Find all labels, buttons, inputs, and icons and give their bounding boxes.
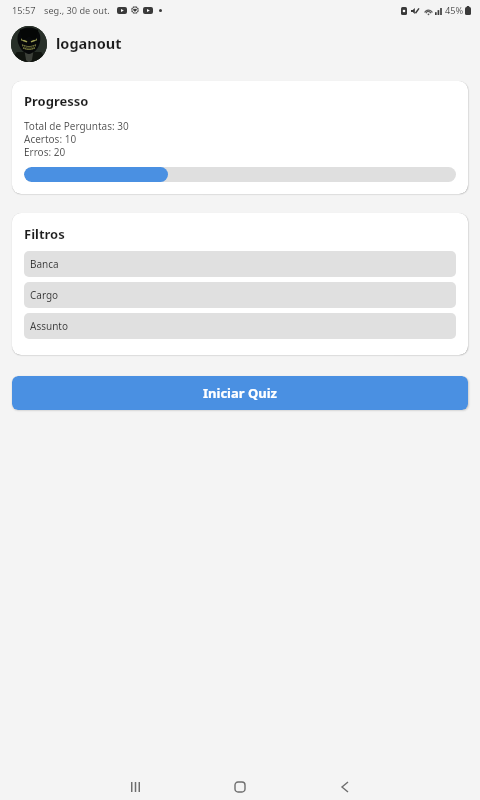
staticText: seg., 30 de out. xyxy=(44,4,110,17)
staticText: Assunto xyxy=(30,319,68,333)
staticText: Progresso xyxy=(24,92,89,110)
staticText: Cargo xyxy=(30,288,59,302)
button[interactable]: Profile avatar xyxy=(11,26,47,62)
staticText: Iniciar Quiz xyxy=(203,384,277,402)
staticText: 15:57 xyxy=(12,4,36,17)
button[interactable]: Iniciar Quiz xyxy=(12,376,468,410)
button[interactable]: Home xyxy=(216,763,264,800)
staticText: Banca xyxy=(30,257,59,271)
button[interactable]: Assunto xyxy=(24,313,456,339)
staticText: Total de Perguntas: 30 xyxy=(24,119,129,133)
staticText: 45% xyxy=(445,4,464,17)
staticText: Acertos: 10 xyxy=(24,132,77,146)
staticText: Erros: 20 xyxy=(24,145,66,159)
staticText: Filtros xyxy=(24,225,65,243)
button[interactable]: Recent apps xyxy=(111,763,159,800)
button[interactable]: Banca xyxy=(24,251,456,277)
button[interactable]: Back xyxy=(321,763,369,800)
staticText: loganout xyxy=(56,33,122,53)
button[interactable]: Cargo xyxy=(24,282,456,308)
